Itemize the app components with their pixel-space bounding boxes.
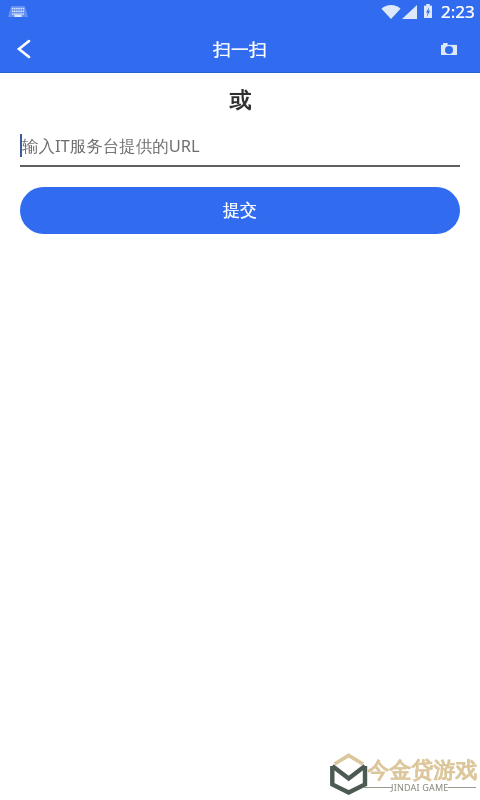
staticText: 输入IT服务台提供的URL <box>22 134 200 157</box>
button[interactable]: 提交 <box>20 187 460 234</box>
button[interactable]: Back <box>1 26 46 71</box>
staticText: 扫一扫 <box>213 39 267 62</box>
staticText: JINDAI GAME <box>391 781 449 793</box>
button[interactable]: 输入IT服务台提供的URL <box>0 130 480 167</box>
staticText: 或 <box>229 87 251 115</box>
staticText: 2:23 <box>441 0 475 23</box>
staticText: 今金贷游戏 <box>367 757 477 785</box>
staticText: 提交 <box>223 200 257 221</box>
button[interactable]: Camera <box>426 26 471 71</box>
